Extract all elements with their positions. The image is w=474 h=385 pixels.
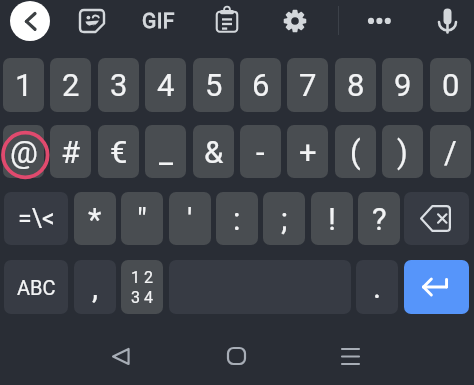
button[interactable]: , (74, 260, 116, 314)
button[interactable]: 1 (3, 58, 44, 112)
staticText: 5 (205, 67, 223, 103)
button[interactable]: * (74, 192, 116, 245)
staticText: / (444, 134, 457, 170)
button[interactable]: ) (382, 125, 423, 178)
staticText: . (373, 269, 382, 305)
button[interactable]: + (287, 125, 328, 178)
staticText: * (88, 201, 102, 237)
button[interactable]: # (50, 125, 91, 178)
staticText: ! (328, 201, 336, 237)
button[interactable]: 0 (430, 58, 471, 112)
button[interactable]: ( (335, 125, 376, 178)
staticText: 2 (62, 67, 80, 103)
staticText: =\< (18, 204, 55, 233)
button[interactable]: 4 (145, 58, 186, 112)
button[interactable]: Home (221, 341, 251, 371)
staticText: : (233, 201, 241, 237)
staticText: - (256, 134, 265, 170)
staticText: ( (350, 134, 361, 170)
staticText: ABC (17, 276, 56, 299)
button[interactable]: ; (263, 192, 305, 245)
staticText: 1 (15, 67, 33, 103)
button[interactable]: 8 (335, 58, 376, 112)
staticText: 8 (347, 67, 365, 103)
button[interactable]: Clipboard (205, 0, 249, 42)
button[interactable]: 5 (193, 58, 234, 112)
staticText: _ (159, 134, 173, 170)
button[interactable]: & (193, 125, 234, 178)
staticText: @ (10, 134, 38, 170)
button[interactable]: GIF (136, 0, 180, 42)
button[interactable]: € (98, 125, 139, 178)
button[interactable]: More options (357, 0, 402, 42)
staticText: + (299, 134, 317, 170)
button[interactable]: . (356, 260, 398, 314)
staticText: € (110, 134, 128, 170)
button[interactable]: Back (10, 1, 50, 41)
button[interactable]: ABC (4, 260, 68, 314)
button[interactable]: Voice input (425, 0, 470, 42)
staticText: ; (281, 201, 288, 237)
staticText: 3 (110, 67, 128, 103)
button[interactable]: Recent apps (335, 341, 365, 371)
staticText: GIF (142, 9, 175, 34)
button[interactable]: 6 (240, 58, 281, 112)
button[interactable]: Back (106, 341, 136, 371)
staticText: ) (397, 134, 408, 170)
button[interactable]: @ (3, 125, 44, 178)
staticText: ? (372, 201, 387, 237)
button[interactable]: Backspace (404, 192, 469, 245)
button[interactable]: ? (358, 192, 400, 245)
staticText: & (204, 134, 224, 170)
button[interactable]: ! (311, 192, 353, 245)
button[interactable]: ' (169, 192, 211, 245)
button[interactable]: =\< (4, 192, 68, 245)
staticText: 7 (299, 67, 317, 103)
button[interactable]: 7 (287, 58, 328, 112)
button[interactable]: 1 2 (121, 260, 163, 314)
staticText: 6 (252, 67, 270, 103)
button[interactable]: Settings (273, 0, 317, 42)
staticText: ' (187, 201, 193, 237)
button[interactable]: 2 (50, 58, 91, 112)
staticText: " (137, 201, 147, 237)
staticText: , (92, 269, 99, 305)
staticText: 0 (442, 67, 460, 103)
button[interactable]: - (240, 125, 281, 178)
staticText: 3 4 (131, 288, 153, 307)
button[interactable]: / (430, 125, 471, 178)
button[interactable]: Stickers (70, 0, 114, 42)
button[interactable]: 3 (98, 58, 139, 112)
staticText: 4 (157, 67, 175, 103)
button[interactable]: " (121, 192, 163, 245)
button[interactable]: : (216, 192, 258, 245)
staticText: 1 2 (131, 268, 153, 287)
button[interactable]: _ (145, 125, 186, 178)
staticText: 9 (394, 67, 412, 103)
staticText: # (61, 134, 81, 170)
button[interactable]: Enter (404, 260, 469, 314)
button[interactable]: 9 (382, 58, 423, 112)
